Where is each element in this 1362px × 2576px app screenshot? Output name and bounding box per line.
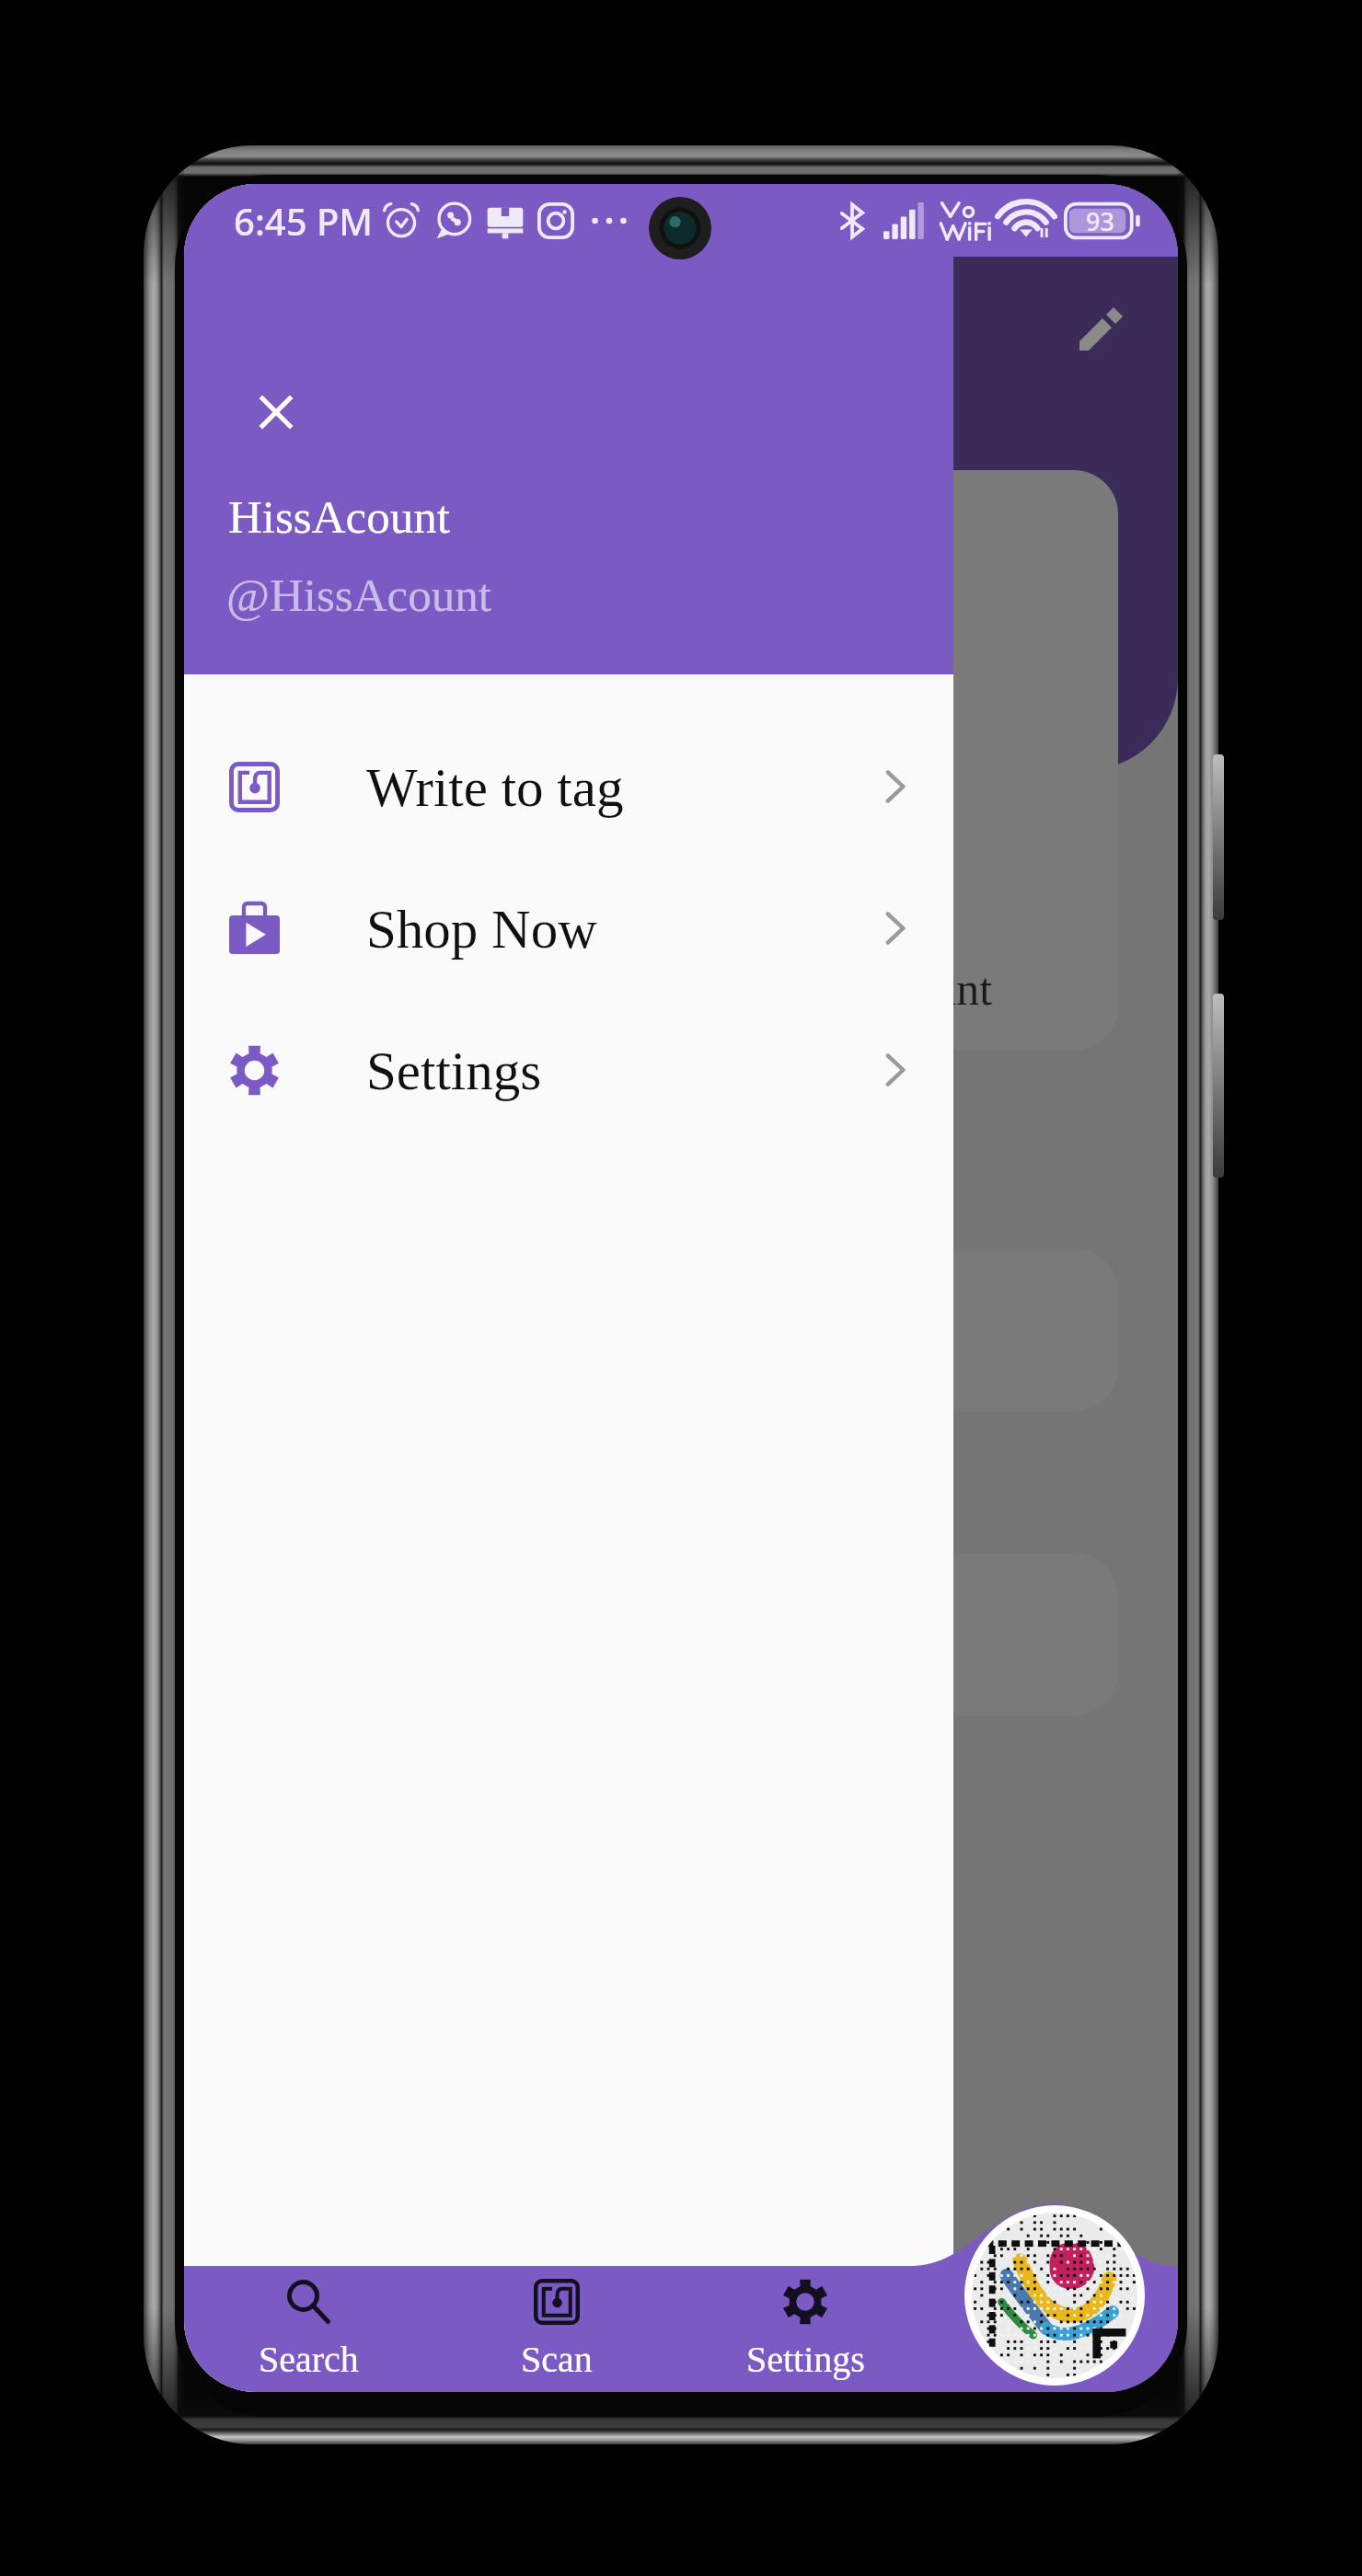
button[interactable]: Settings — [184, 999, 953, 1141]
button[interactable]: Search — [184, 2266, 433, 2392]
button[interactable]: Scan — [433, 2266, 681, 2392]
staticText: 93 — [1086, 204, 1114, 238]
button[interactable]: Write to tag — [184, 716, 953, 857]
staticText: Settings — [746, 2339, 865, 2379]
staticText: Shop Now — [366, 899, 597, 959]
button[interactable]: Edit — [1060, 291, 1139, 370]
staticText: HissAcount — [775, 963, 993, 1014]
button[interactable]: Close drawer — [237, 374, 315, 451]
staticText: @HissAcount — [226, 569, 491, 621]
button[interactable]: Settings — [681, 2266, 929, 2392]
staticText: 6:45 PM — [234, 196, 374, 246]
staticText: HissAcount — [228, 491, 450, 543]
staticText: Search — [259, 2339, 359, 2379]
staticText: Scan — [521, 2339, 593, 2379]
button[interactable]: Profile — [964, 2205, 1145, 2386]
staticText: Write to tag — [366, 757, 624, 817]
button[interactable]: Shop Now — [184, 857, 953, 999]
staticText: Settings — [366, 1041, 542, 1100]
